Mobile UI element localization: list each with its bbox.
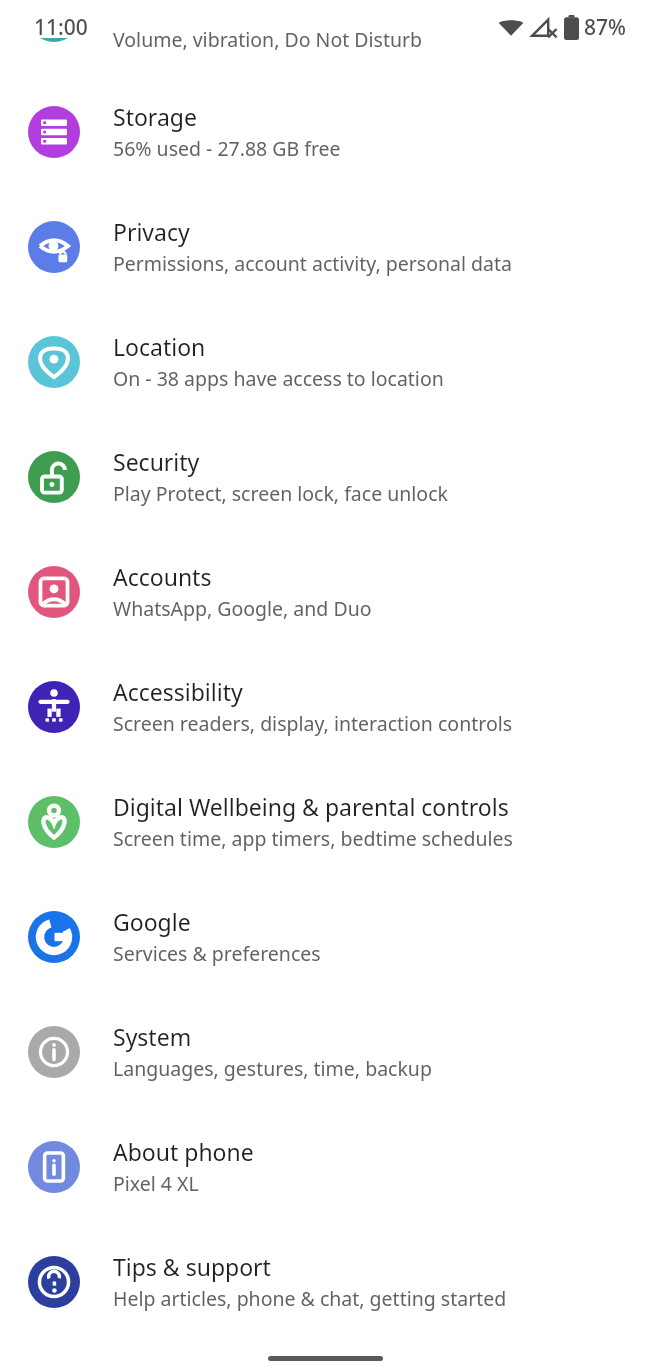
staticText: System — [113, 1021, 192, 1052]
staticText: Accounts — [113, 561, 212, 592]
staticText: Play Protect, screen lock, face unlock — [113, 480, 448, 507]
staticText: Services & preferences — [113, 940, 321, 967]
staticText: WhatsApp, Google, and Duo — [113, 595, 372, 622]
other: Battery 87 percent — [564, 15, 579, 40]
button[interactable]: Digital Wellbeing & parental controls — [0, 764, 650, 879]
staticText: Privacy — [113, 216, 190, 247]
button[interactable]: Security — [0, 419, 650, 534]
staticText: 56% used - 27.88 GB free — [113, 135, 341, 162]
staticText: About phone — [113, 1136, 254, 1167]
button[interactable]: Privacy — [0, 189, 650, 304]
staticText: Permissions, account activity, personal … — [113, 250, 512, 277]
staticText: Help articles, phone & chat, getting sta… — [113, 1285, 507, 1312]
staticText: Tips & support — [113, 1251, 271, 1282]
staticText: Storage — [113, 101, 197, 132]
staticText: Accessibility — [113, 676, 243, 707]
staticText: Google — [113, 906, 191, 937]
other: Wi-Fi — [498, 15, 524, 41]
button[interactable]: Location — [0, 304, 650, 419]
staticText: Security — [113, 446, 200, 477]
button[interactable]: System — [0, 994, 650, 1109]
staticText: Digital Wellbeing & parental controls — [113, 791, 509, 822]
button[interactable]: Volume, vibration, Do Not Disturb — [0, 0, 650, 57]
button[interactable]: Accessibility — [0, 649, 650, 764]
button[interactable]: Accounts — [0, 534, 650, 649]
staticText: On - 38 apps have access to location — [113, 365, 444, 392]
button[interactable]: About phone — [0, 1109, 650, 1224]
staticText: 11:00 — [34, 13, 88, 42]
button[interactable]: Storage — [0, 74, 650, 189]
staticText: Screen readers, display, interaction con… — [113, 710, 513, 737]
staticText: Screen time, app timers, bedtime schedul… — [113, 825, 513, 852]
staticText: Languages, gestures, time, backup — [113, 1055, 432, 1082]
button[interactable]: Google — [0, 879, 650, 994]
button[interactable]: Tips & support — [0, 1224, 650, 1339]
staticText: Location — [113, 331, 206, 362]
other: No mobile signal — [530, 15, 556, 41]
staticText: Volume, vibration, Do Not Disturb — [113, 26, 423, 53]
staticText: 87% — [584, 13, 626, 42]
staticText: Pixel 4 XL — [113, 1170, 199, 1197]
